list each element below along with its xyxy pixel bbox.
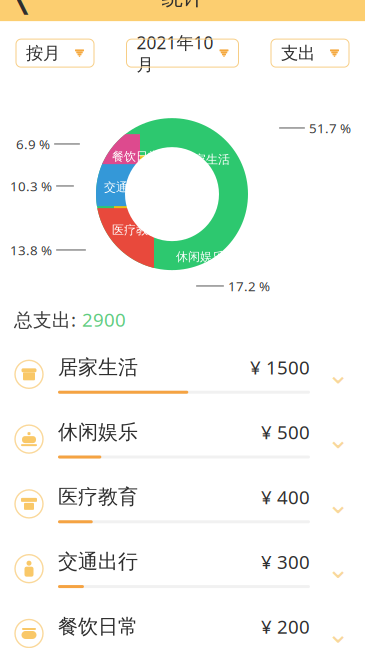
- button[interactable]: 餐饮日常: [0, 601, 365, 648]
- staticText: ❬: [10, 0, 35, 14]
- staticText: ⌄: [327, 554, 349, 584]
- staticText: 休闲娱乐: [176, 249, 224, 264]
- staticText: ¥ 400: [261, 484, 310, 509]
- staticText: 餐饮日常: [112, 149, 160, 164]
- staticText: ¥ 200: [261, 614, 310, 639]
- staticText: 2021年10月: [136, 31, 213, 75]
- staticText: ⌄: [327, 424, 349, 454]
- button[interactable]: 支出: [271, 39, 349, 67]
- staticText: 17.2 %: [228, 277, 270, 295]
- button[interactable]: 医疗教育: [0, 471, 365, 536]
- staticText: ¥ 500: [261, 420, 310, 444]
- staticText: 居家生活: [182, 152, 230, 167]
- staticText: 按月: [26, 42, 60, 64]
- staticText: 支出: [281, 42, 315, 64]
- staticText: 医疗教育: [58, 485, 138, 509]
- staticText: ⌄: [327, 618, 349, 648]
- staticText: 10.3 %: [10, 177, 52, 195]
- button[interactable]: 休闲娱乐: [0, 407, 365, 471]
- button[interactable]: 2021年10月: [126, 39, 238, 67]
- staticText: 居家生活: [58, 355, 138, 380]
- staticText: ¥ 1500: [250, 355, 310, 380]
- staticText: 总支出:: [14, 307, 76, 332]
- staticText: 交通出行: [58, 549, 138, 574]
- button[interactable]: 居家生活: [0, 342, 365, 407]
- staticText: 餐饮日常: [58, 614, 138, 639]
- staticText: 6.9 %: [16, 135, 50, 153]
- staticText: 51.7 %: [309, 119, 351, 137]
- button[interactable]: 按月: [16, 39, 94, 67]
- staticText: ⌄: [327, 489, 349, 519]
- button[interactable]: 交通出行: [0, 536, 365, 601]
- staticText: 统计: [161, 0, 203, 11]
- staticText: 休闲娱乐: [58, 420, 138, 444]
- button[interactable]: Back: [0, 0, 46, 21]
- staticText: 交通出行: [104, 180, 152, 195]
- staticText: ⌄: [327, 359, 349, 389]
- staticText: 医疗教育: [112, 223, 160, 237]
- staticText: ¥ 300: [261, 549, 310, 574]
- staticText: 2900: [82, 307, 126, 332]
- staticText: 13.8 %: [10, 241, 52, 259]
